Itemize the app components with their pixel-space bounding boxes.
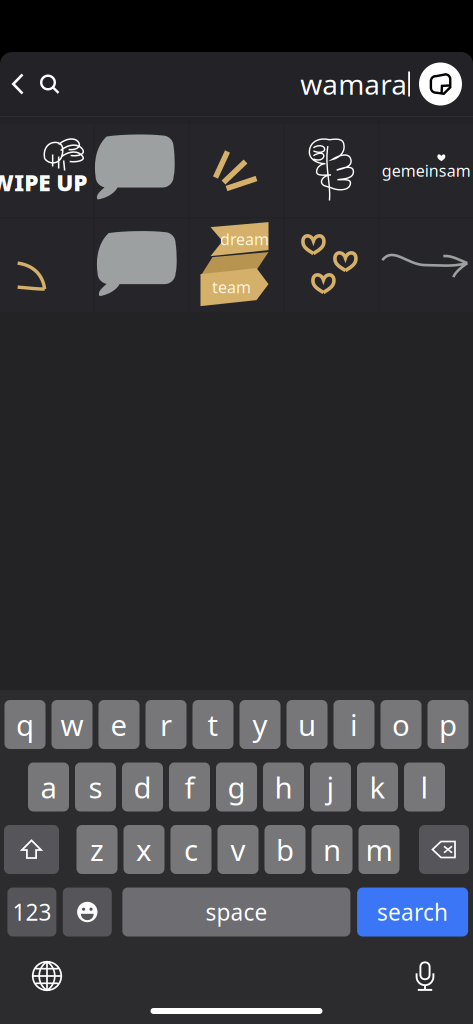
staticText: b	[276, 830, 294, 869]
staticText: z	[90, 830, 104, 869]
staticText: g	[227, 767, 245, 806]
button[interactable]	[285, 219, 378, 312]
button[interactable]: q	[4, 700, 45, 749]
button[interactable]: y	[239, 700, 280, 749]
staticText: wamara	[300, 65, 407, 103]
button[interactable]: j	[310, 762, 351, 811]
button[interactable]: Shift	[4, 825, 59, 874]
button[interactable]: x	[123, 825, 164, 874]
staticText: p	[439, 705, 457, 744]
button[interactable]: Stickers	[419, 62, 462, 105]
button[interactable]: n	[311, 825, 352, 874]
button[interactable]: dream	[190, 219, 283, 312]
button[interactable]: e	[98, 700, 139, 749]
button[interactable]: z	[76, 825, 117, 874]
staticText: WIPE UP	[0, 167, 87, 197]
button[interactable]: r	[145, 700, 186, 749]
staticText: team	[212, 276, 251, 298]
button[interactable]: WIPE UP	[0, 124, 93, 217]
button[interactable]: o	[380, 700, 421, 749]
button[interactable]: space	[122, 887, 350, 936]
button[interactable]	[190, 124, 283, 217]
staticText: w	[60, 705, 83, 744]
button[interactable]: a	[28, 762, 69, 811]
button[interactable]	[95, 219, 188, 312]
button[interactable]: b	[264, 825, 305, 874]
staticText: c	[184, 830, 198, 869]
button[interactable]: p	[427, 700, 468, 749]
button[interactable]: g	[216, 762, 257, 811]
button[interactable]: Next keyboard	[24, 959, 70, 993]
button[interactable]	[380, 219, 473, 312]
button[interactable]: gemeinsam	[380, 124, 473, 217]
staticText: s	[88, 767, 102, 806]
button[interactable]: Search	[33, 61, 65, 107]
staticText: y	[252, 705, 267, 744]
button[interactable]: c	[170, 825, 211, 874]
button[interactable]: v	[217, 825, 258, 874]
staticText: k	[369, 767, 385, 806]
button[interactable]	[95, 124, 188, 217]
button[interactable]: Delete	[419, 825, 469, 874]
button[interactable]: w	[51, 700, 92, 749]
staticText: v	[230, 830, 245, 869]
button[interactable]: k	[357, 762, 398, 811]
staticText: d	[133, 767, 151, 806]
staticText: x	[136, 830, 152, 869]
button[interactable]: 123	[7, 887, 56, 936]
staticText: t	[207, 705, 218, 744]
button[interactable]: search	[357, 887, 468, 936]
staticText: h	[274, 767, 292, 806]
staticText: search	[377, 897, 448, 927]
button[interactable]	[285, 124, 378, 217]
button[interactable]: t	[192, 700, 233, 749]
button[interactable]: Back	[6, 61, 30, 107]
staticText: n	[323, 830, 341, 869]
staticText: m	[365, 830, 392, 869]
button[interactable]	[0, 219, 93, 312]
staticText: o	[392, 705, 410, 744]
staticText: gemeinsam	[382, 160, 471, 181]
staticText: a	[40, 767, 56, 806]
button[interactable]: Dictation	[402, 959, 448, 993]
button[interactable]: s	[75, 762, 116, 811]
staticText: q	[16, 705, 34, 744]
staticText: dream	[220, 228, 269, 250]
button[interactable]: h	[263, 762, 304, 811]
staticText: l	[420, 767, 428, 806]
staticText: j	[326, 767, 334, 806]
staticText: u	[298, 705, 316, 744]
button[interactable]: u	[286, 700, 327, 749]
button[interactable]: m	[358, 825, 399, 874]
button[interactable]: d	[122, 762, 163, 811]
button[interactable]: l	[404, 762, 445, 811]
button[interactable]: Emoji	[63, 887, 112, 936]
staticText: space	[205, 897, 267, 927]
button[interactable]: f	[169, 762, 210, 811]
staticText: r	[160, 705, 172, 744]
staticText: 123	[12, 897, 51, 927]
staticText: i	[350, 705, 358, 744]
staticText: e	[110, 705, 127, 744]
staticText: f	[184, 767, 194, 806]
button[interactable]: i	[333, 700, 374, 749]
